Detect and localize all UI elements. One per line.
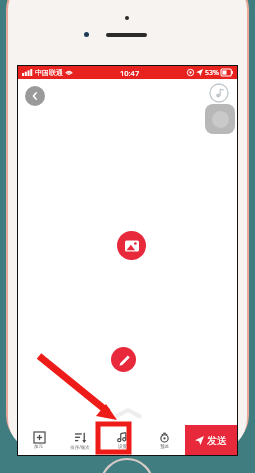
button[interactable]: 加元 (18, 425, 59, 455)
staticText: 设置 (118, 444, 127, 450)
staticText: 排序/顺次 (70, 444, 90, 450)
button[interactable]: Edit text (111, 347, 136, 372)
button[interactable]: Back (25, 86, 45, 106)
button[interactable] (205, 104, 235, 134)
staticText: 加元 (34, 444, 43, 450)
staticText: 预览 (160, 444, 169, 450)
staticText: 10:47 (120, 68, 140, 78)
button[interactable]: 预览 (143, 425, 185, 455)
button[interactable]: 设置 (101, 425, 143, 455)
button[interactable]: 排序/顺次 (59, 425, 101, 455)
button[interactable]: Music (209, 83, 229, 103)
staticText: 53% (205, 68, 219, 78)
button[interactable]: Add image (117, 231, 146, 260)
staticText: 中国联通 (35, 68, 63, 77)
button[interactable]: 发送 (185, 425, 237, 455)
staticText: 发送 (207, 434, 227, 447)
